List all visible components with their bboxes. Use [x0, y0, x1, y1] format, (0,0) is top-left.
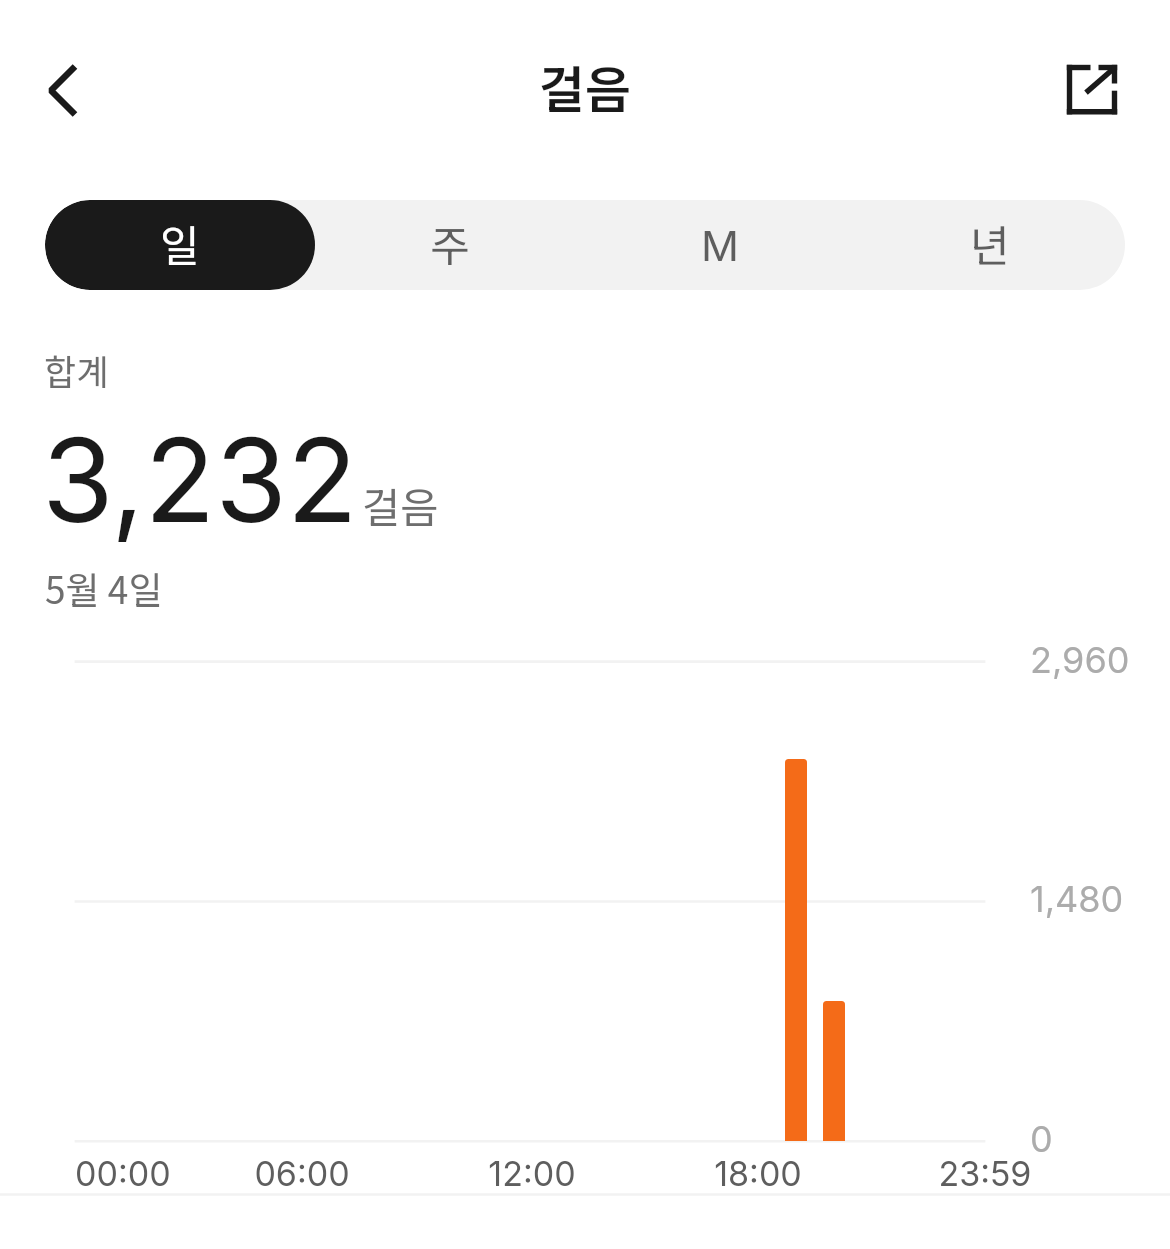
staticText: 주 [430, 212, 470, 274]
staticText: 23:59 [835, 1153, 1135, 1194]
button[interactable]: Share [1042, 40, 1142, 140]
staticText: 걸음 [362, 475, 439, 535]
staticText: 00:00 [75, 1153, 171, 1194]
staticText: 일 [160, 212, 200, 274]
staticText: 0 [1030, 1117, 1053, 1161]
staticText: 06:00 [152, 1153, 452, 1194]
staticText: 년 [970, 212, 1010, 274]
button[interactable]: Back [8, 46, 98, 136]
staticText: 걸음 [539, 50, 631, 122]
button[interactable]: 년 [855, 200, 1125, 290]
staticText: 1,480 [1030, 877, 1124, 921]
staticText: M [701, 220, 739, 271]
staticText: 18:00 [608, 1153, 908, 1194]
button[interactable]: M [585, 200, 855, 290]
staticText: 3,232 [42, 410, 358, 550]
staticText: 12:00 [382, 1153, 682, 1194]
staticText: 합계 [44, 344, 109, 395]
button[interactable]: 주 [315, 200, 585, 290]
staticText: 5월 4일 [45, 561, 163, 615]
staticText: 2,960 [1030, 638, 1130, 682]
button[interactable]: 일 [45, 200, 315, 290]
